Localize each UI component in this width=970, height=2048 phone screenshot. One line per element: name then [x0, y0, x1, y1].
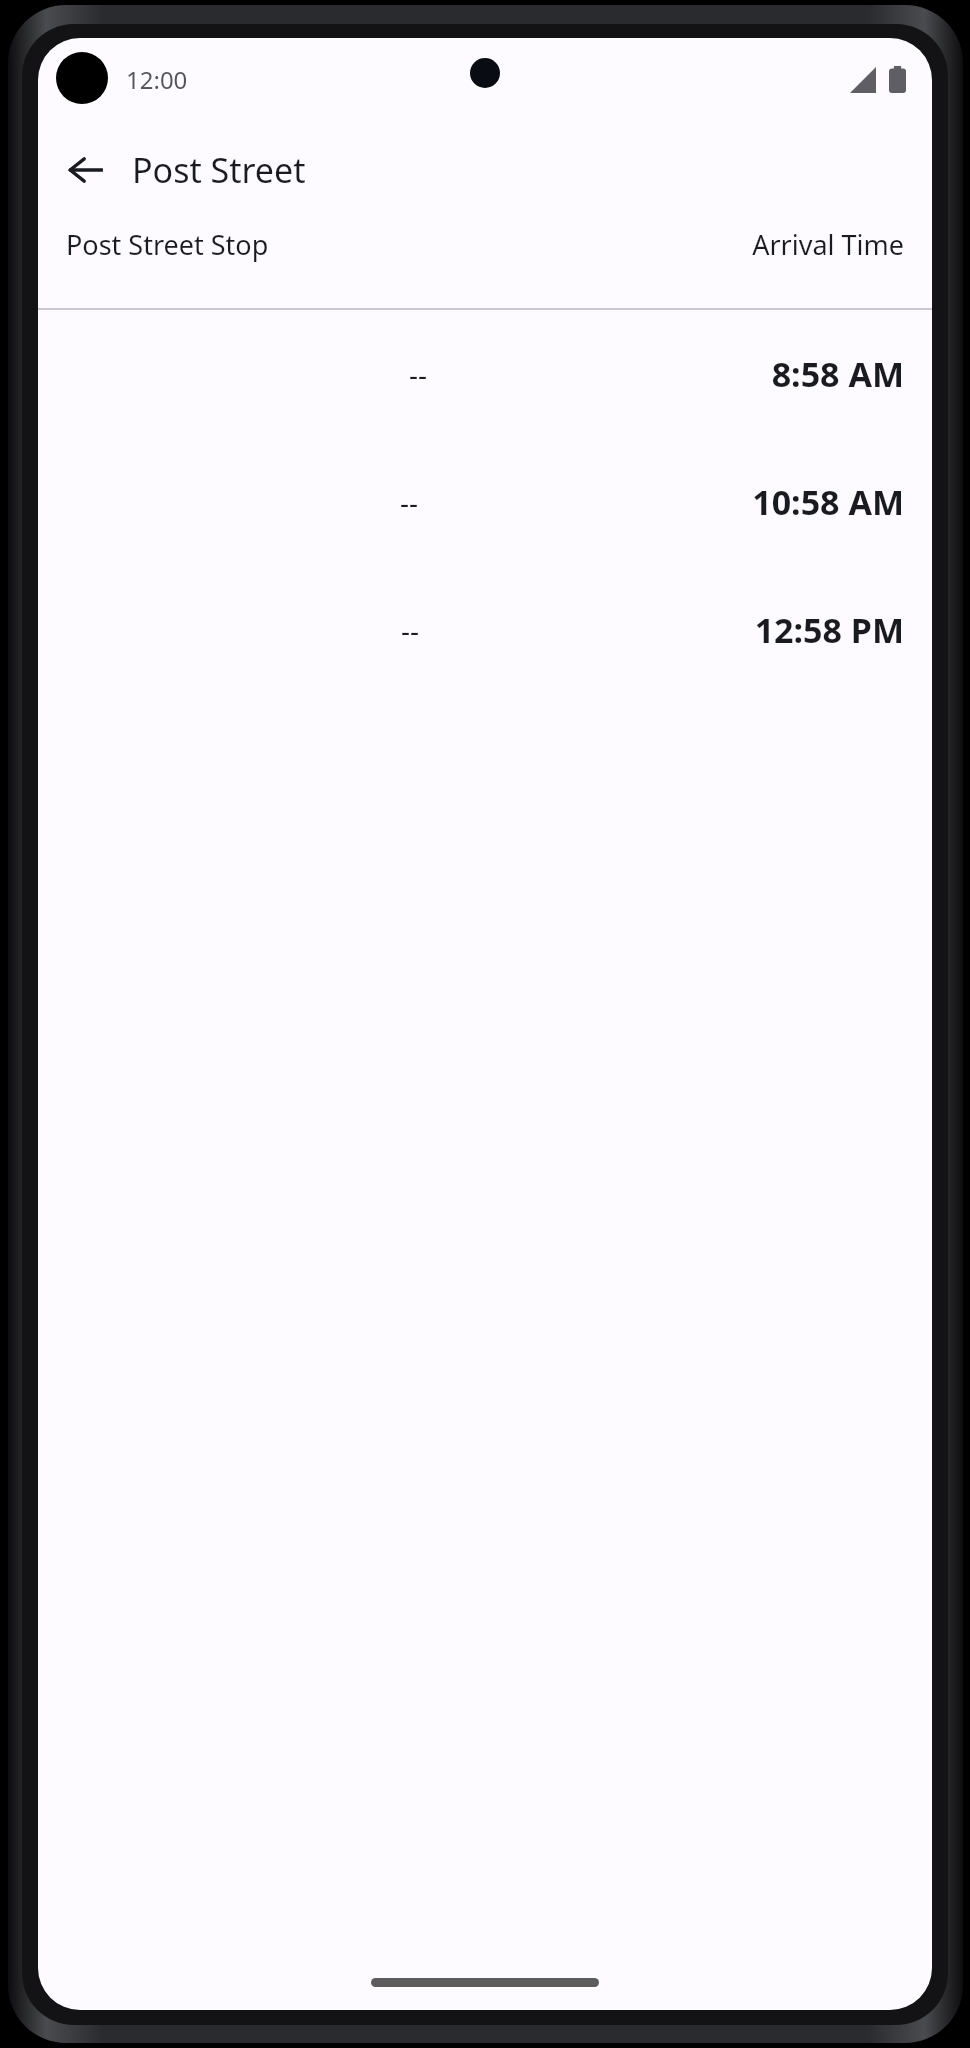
- staticText: --: [401, 611, 420, 649]
- staticText: 12:58 PM: [754, 607, 904, 653]
- staticText: 8:58 AM: [771, 351, 904, 397]
- staticText: Post Street: [132, 147, 306, 193]
- staticText: --: [400, 483, 419, 521]
- staticText: Post Street Stop: [66, 226, 752, 263]
- staticText: Arrival Time: [752, 226, 904, 263]
- button[interactable]: Back: [54, 138, 118, 202]
- button[interactable]: --: [38, 438, 932, 566]
- button[interactable]: --: [38, 566, 932, 694]
- staticText: 12:00: [126, 63, 188, 96]
- staticText: 10:58 AM: [752, 479, 904, 525]
- staticText: --: [409, 355, 428, 393]
- button[interactable]: --: [38, 310, 932, 438]
